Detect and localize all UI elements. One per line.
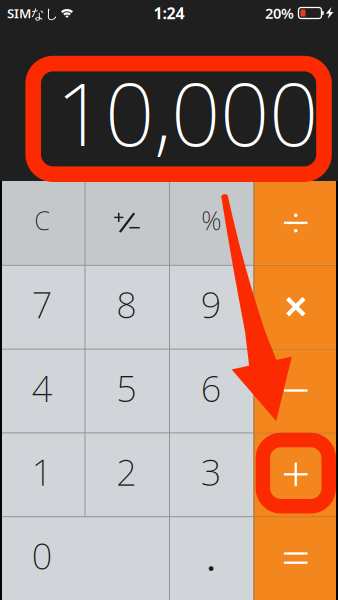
staticText: 3 <box>201 448 222 496</box>
staticText: 9 <box>201 280 222 328</box>
button[interactable]: Decimal point <box>169 516 253 600</box>
button[interactable]: 6 <box>169 349 253 432</box>
staticText: 1:24 <box>153 2 184 24</box>
button[interactable]: 9 <box>169 265 253 349</box>
staticText: 20% <box>265 3 294 23</box>
button[interactable]: C <box>0 181 84 265</box>
button[interactable]: 5 <box>84 349 169 432</box>
staticText: C <box>34 204 50 237</box>
button[interactable]: 8 <box>84 265 169 349</box>
staticText: 8 <box>116 280 137 328</box>
staticText: 0 <box>32 532 53 579</box>
button[interactable]: 4 <box>0 349 84 432</box>
button[interactable]: 3 <box>169 432 253 516</box>
staticText: 5 <box>116 364 137 412</box>
staticText: % <box>201 204 221 237</box>
button[interactable]: 7 <box>0 265 84 349</box>
staticText: 2 <box>116 448 137 496</box>
button[interactable]: Add <box>253 432 338 516</box>
staticText: 1 <box>32 448 53 496</box>
staticText: 6 <box>201 364 222 412</box>
staticText: 7 <box>32 280 53 328</box>
button[interactable]: 2 <box>84 432 169 516</box>
button[interactable]: Divide <box>253 181 338 265</box>
button[interactable]: 1 <box>0 432 84 516</box>
staticText: SIMなし <box>7 4 59 22</box>
button[interactable]: Toggle sign <box>84 181 169 265</box>
button[interactable]: Subtract <box>253 349 338 432</box>
staticText: 10,000 <box>56 55 318 170</box>
staticText: 4 <box>32 364 53 412</box>
button[interactable]: Equals <box>253 516 338 600</box>
button[interactable]: Multiply <box>253 265 338 349</box>
button[interactable]: % <box>169 181 253 265</box>
button[interactable]: 0 <box>0 516 169 600</box>
